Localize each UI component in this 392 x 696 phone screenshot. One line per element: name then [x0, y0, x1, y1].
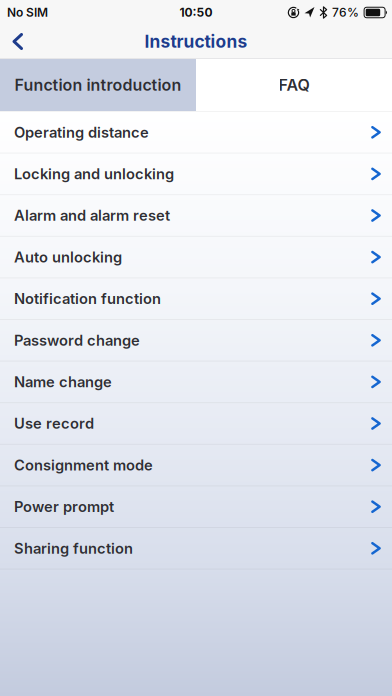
staticText: 76% [332, 5, 359, 20]
button[interactable]: FAQ [196, 59, 392, 111]
staticText: Name change [14, 373, 112, 390]
staticText: Consignment mode [14, 456, 153, 474]
staticText: Use record [14, 415, 94, 432]
button[interactable]: Back [0, 25, 24, 58]
staticText: Alarm and alarm reset [14, 207, 170, 224]
button[interactable]: Alarm and alarm reset [0, 195, 392, 237]
button[interactable]: Consignment mode [0, 445, 392, 486]
staticText: Password change [14, 332, 140, 349]
button[interactable]: Password change [0, 320, 392, 362]
button[interactable]: Notification function [0, 278, 392, 320]
staticText: FAQ [278, 76, 309, 94]
button[interactable]: Locking and unlocking [0, 154, 392, 195]
button[interactable]: Operating distance [0, 112, 392, 154]
button[interactable]: Function introduction [0, 59, 196, 111]
button[interactable]: Sharing function [0, 528, 392, 570]
staticText: Instructions [144, 31, 247, 52]
button[interactable]: Name change [0, 362, 392, 403]
staticText: Locking and unlocking [14, 165, 174, 182]
staticText: No SIM [7, 5, 48, 20]
button[interactable]: Power prompt [0, 486, 392, 528]
button[interactable]: Use record [0, 403, 392, 445]
staticText: Operating distance [14, 124, 149, 141]
staticText: Notification function [14, 290, 161, 307]
button[interactable]: Auto unlocking [0, 237, 392, 278]
staticText: Sharing function [14, 540, 133, 557]
staticText: Power prompt [14, 498, 114, 515]
staticText: Function introduction [14, 76, 181, 94]
staticText: 10:50 [179, 5, 212, 20]
staticText: Auto unlocking [14, 248, 122, 266]
